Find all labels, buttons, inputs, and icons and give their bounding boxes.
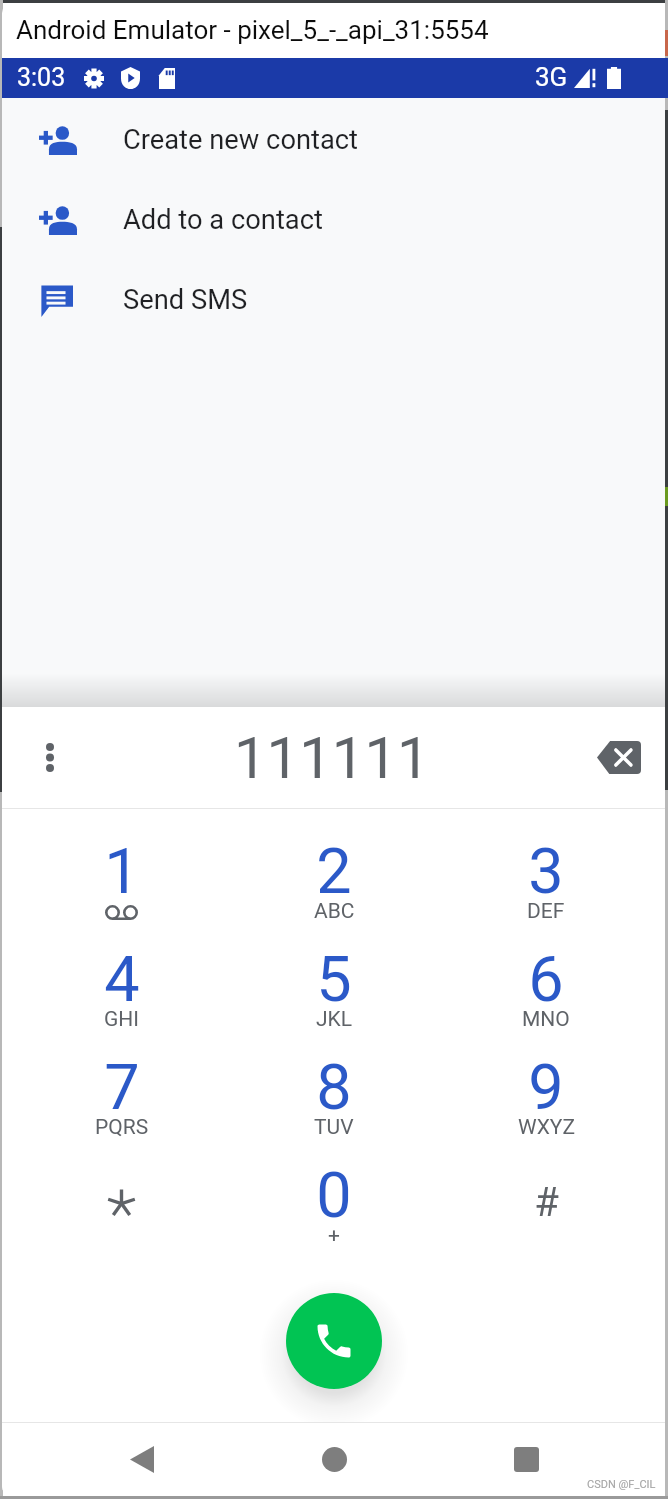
button[interactable]: Add to a contact — [2, 180, 665, 260]
button[interactable]: More options — [2, 707, 98, 808]
staticText: JKL — [316, 1007, 353, 1032]
button[interactable]: # — [440, 1151, 652, 1259]
button[interactable]: 8 — [228, 1043, 440, 1151]
staticText: 9 — [528, 1051, 564, 1125]
staticText: 111111 — [234, 724, 430, 792]
staticText: DEF — [527, 899, 565, 924]
button[interactable] — [15, 1151, 228, 1259]
button[interactable]: 6 — [440, 935, 652, 1043]
staticText: # — [534, 1179, 559, 1226]
staticText: 6 — [528, 943, 564, 1017]
staticText: + — [328, 1223, 340, 1248]
staticText: 7 — [104, 1051, 140, 1125]
staticText: 3:03 — [17, 63, 66, 92]
staticText: ABC — [314, 899, 355, 924]
staticText: Add to a contact — [123, 204, 323, 236]
button[interactable]: 7 — [15, 1043, 228, 1151]
staticText: 3 — [528, 835, 564, 909]
staticText: 8 — [316, 1051, 352, 1125]
staticText: WXYZ — [518, 1115, 575, 1140]
button[interactable]: 0 — [228, 1151, 440, 1259]
button[interactable]: 3 — [440, 827, 652, 935]
staticText: 2 — [316, 835, 352, 909]
button[interactable]: Recents — [430, 1423, 622, 1496]
staticText: Send SMS — [123, 284, 248, 316]
button[interactable]: Send SMS — [2, 260, 665, 340]
staticText: 5 — [316, 943, 352, 1017]
staticText: 1 — [104, 835, 140, 909]
staticText: Android Emulator - pixel_5_-_api_31:5554 — [16, 15, 489, 45]
button[interactable]: Home — [238, 1423, 430, 1496]
staticText: TUV — [314, 1115, 354, 1140]
button[interactable]: Create new contact — [2, 100, 665, 180]
staticText: MNO — [522, 1007, 570, 1032]
button[interactable]: 5 — [228, 935, 440, 1043]
staticText: GHI — [104, 1007, 139, 1032]
button[interactable]: Back — [46, 1423, 238, 1496]
staticText: 0 — [316, 1159, 352, 1233]
button[interactable]: 2 — [228, 827, 440, 935]
staticText: Create new contact — [123, 124, 359, 156]
button[interactable]: 9 — [440, 1043, 652, 1151]
button[interactable]: 4 — [15, 935, 228, 1043]
staticText: 4 — [104, 943, 140, 1017]
staticText: 3G — [535, 62, 568, 92]
staticText: PQRS — [95, 1115, 149, 1140]
button[interactable]: 1 — [15, 827, 228, 935]
staticText: CSDN @F_CIL — [587, 1478, 656, 1491]
button[interactable]: Call — [286, 1293, 382, 1389]
button[interactable]: Backspace — [573, 707, 665, 808]
